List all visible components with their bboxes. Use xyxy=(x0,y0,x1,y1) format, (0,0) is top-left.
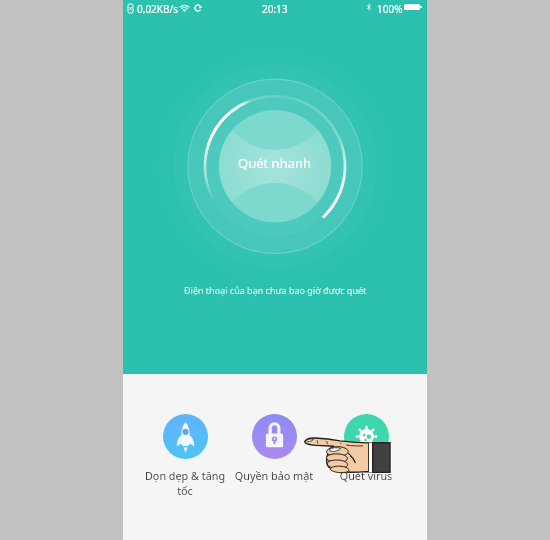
button[interactable]: Quyền bảo mật xyxy=(229,414,319,483)
staticText: Quyền bảo mật xyxy=(229,468,319,483)
staticText: 100% xyxy=(377,2,403,16)
staticText: Dọn dẹp & tăng tốc xyxy=(140,468,230,498)
button[interactable]: Quét virus xyxy=(321,414,411,483)
button[interactable]: Dọn dẹp & tăng tốc xyxy=(140,414,230,498)
staticText: 0,02KB/s xyxy=(137,2,179,16)
staticText: Quét nhanh xyxy=(238,154,312,172)
staticText: Điện thoại của bạn chưa bao giờ được qué… xyxy=(184,284,367,296)
staticText: 20:13 xyxy=(262,2,288,16)
staticText: Quét virus xyxy=(321,468,411,483)
